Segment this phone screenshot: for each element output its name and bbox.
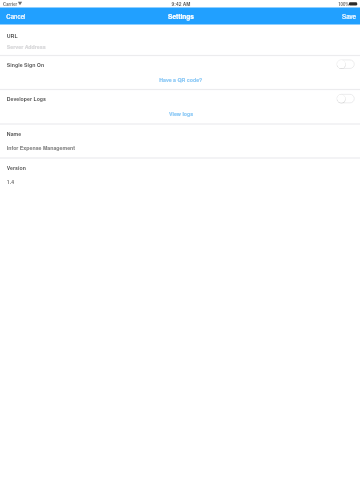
staticText: Cancel <box>6 12 26 21</box>
staticText: Developer Logs <box>7 95 47 103</box>
button[interactable] <box>0 24 360 480</box>
button[interactable] <box>165 108 196 119</box>
button[interactable] <box>0 7 40 24</box>
staticText: View logs <box>169 110 194 118</box>
staticText: Carrier <box>3 1 18 7</box>
staticText: 1.4 <box>7 177 15 185</box>
staticText: Name <box>7 129 22 137</box>
staticText: Settings <box>168 12 194 21</box>
staticText: URL <box>7 32 18 40</box>
staticText: Server Address <box>7 43 46 51</box>
staticText: Infor Expense Management <box>7 144 76 152</box>
button[interactable] <box>330 7 360 24</box>
button[interactable]: Single Sign On toggle <box>334 57 358 71</box>
staticText: Save <box>342 12 356 21</box>
staticText: Have a QR code? <box>159 75 202 83</box>
staticText: Version <box>7 163 27 171</box>
staticText: 9:42 AM <box>172 0 191 7</box>
staticText: 100% <box>338 1 349 7</box>
button[interactable] <box>155 74 205 85</box>
staticText: Single Sign On <box>7 61 45 69</box>
button[interactable]: Developer Logs toggle <box>334 91 358 105</box>
